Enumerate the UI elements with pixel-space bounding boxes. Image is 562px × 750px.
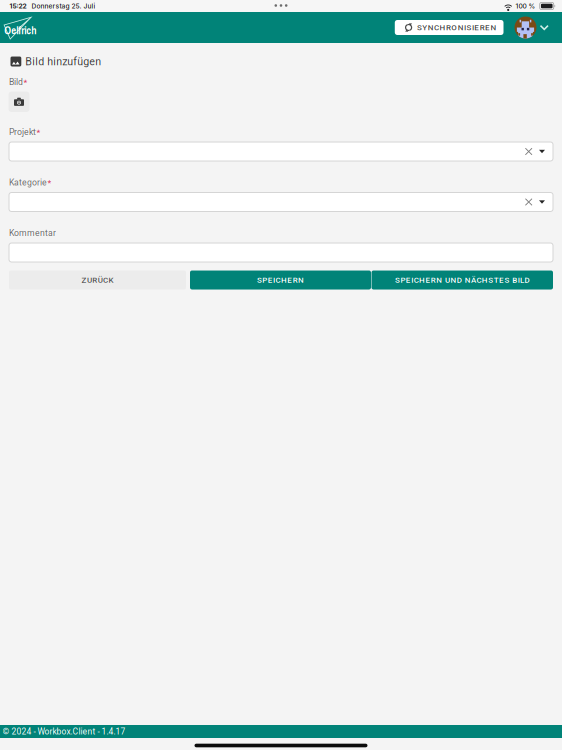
button[interactable]: SPEICHERN UND NÄCHSTES BILD [371,270,553,289]
button[interactable]: Benutzerkonto [503,12,562,43]
button[interactable]: Liste öffnen [535,142,549,160]
button[interactable]: Liste öffnen [535,193,549,211]
button[interactable]: Foto aufnehmen [8,91,29,112]
button[interactable]: Auswahl löschen [522,142,535,160]
staticText: * [23,77,27,87]
staticText: Oelfrich [4,23,36,38]
button[interactable]: ZURÜCK [9,270,186,289]
staticText: * [36,127,40,137]
staticText: 15:22 [9,2,26,10]
staticText: Kategorie [9,177,47,188]
staticText: SYNCHRONISIEREN [417,23,496,32]
staticText: Kommentar [9,228,56,238]
staticText: Donnerstag 25. Juli [31,2,95,10]
staticText: SPEICHERN UND NÄCHSTES BILD [395,275,529,285]
staticText: ZURÜCK [81,275,113,285]
staticText: Projekt [9,127,36,137]
button[interactable]: Auswahl löschen [522,193,535,211]
staticText: SPEICHERN [257,275,304,285]
staticText: * [47,178,51,187]
staticText: Bild [9,77,23,87]
staticText: Bild hinzufügen [25,55,101,68]
staticText: © 2024 - Workbox.Client - 1.4.17 [2,726,125,736]
staticText: 100 % [515,2,535,10]
button[interactable]: SYNCHRONISIEREN [395,20,503,35]
button[interactable]: SPEICHERN [190,270,371,289]
